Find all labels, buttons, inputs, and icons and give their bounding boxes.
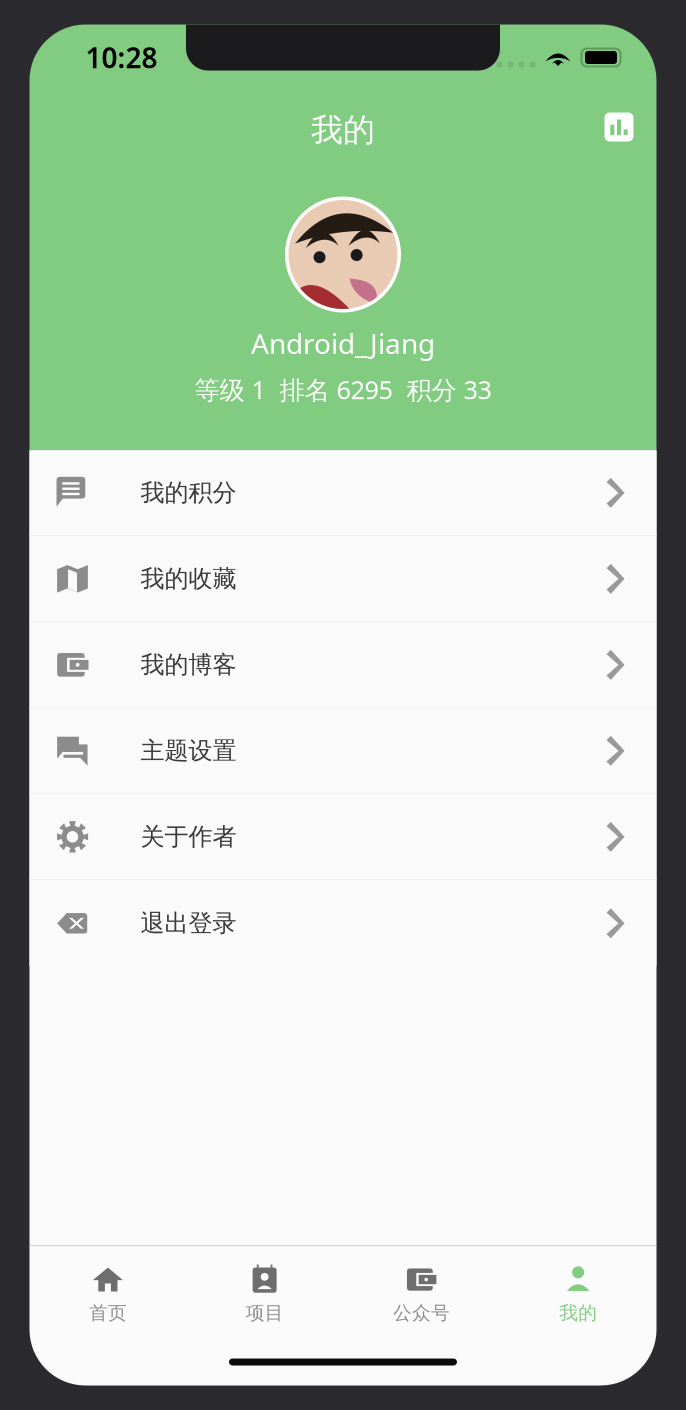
button[interactable]: 公众号 — [343, 1252, 500, 1332]
button[interactable]: 退出登录 — [29, 880, 656, 966]
button[interactable]: 项目 — [186, 1252, 343, 1332]
staticText: 我的 — [311, 110, 375, 150]
button[interactable]: 我的积分 — [29, 450, 656, 536]
staticText: 我的博客 — [140, 650, 236, 680]
staticText: 10:28 — [85, 39, 157, 76]
staticText: 退出登录 — [140, 909, 236, 938]
button[interactable]: 首页 — [29, 1252, 186, 1332]
staticText: 我的收藏 — [140, 564, 236, 594]
staticText: 我的 — [559, 1301, 597, 1324]
staticText: 项目 — [246, 1301, 284, 1324]
staticText: 我的积分 — [140, 478, 236, 508]
button[interactable]: 我的 — [500, 1252, 657, 1332]
staticText: 公众号 — [393, 1301, 450, 1324]
button[interactable]: 关于作者 — [29, 794, 656, 880]
button[interactable]: 主题设置 — [29, 708, 656, 794]
staticText: 首页 — [89, 1301, 127, 1324]
staticText: Android_Jiang — [251, 324, 435, 362]
button[interactable]: 我的收藏 — [29, 536, 656, 622]
staticText: 关于作者 — [140, 822, 236, 852]
button[interactable]: Statistics — [594, 102, 643, 151]
staticText: 主题设置 — [140, 736, 236, 766]
staticText: 等级 1 排名 6295 积分 33 — [194, 373, 491, 406]
button[interactable]: 我的博客 — [29, 622, 656, 708]
